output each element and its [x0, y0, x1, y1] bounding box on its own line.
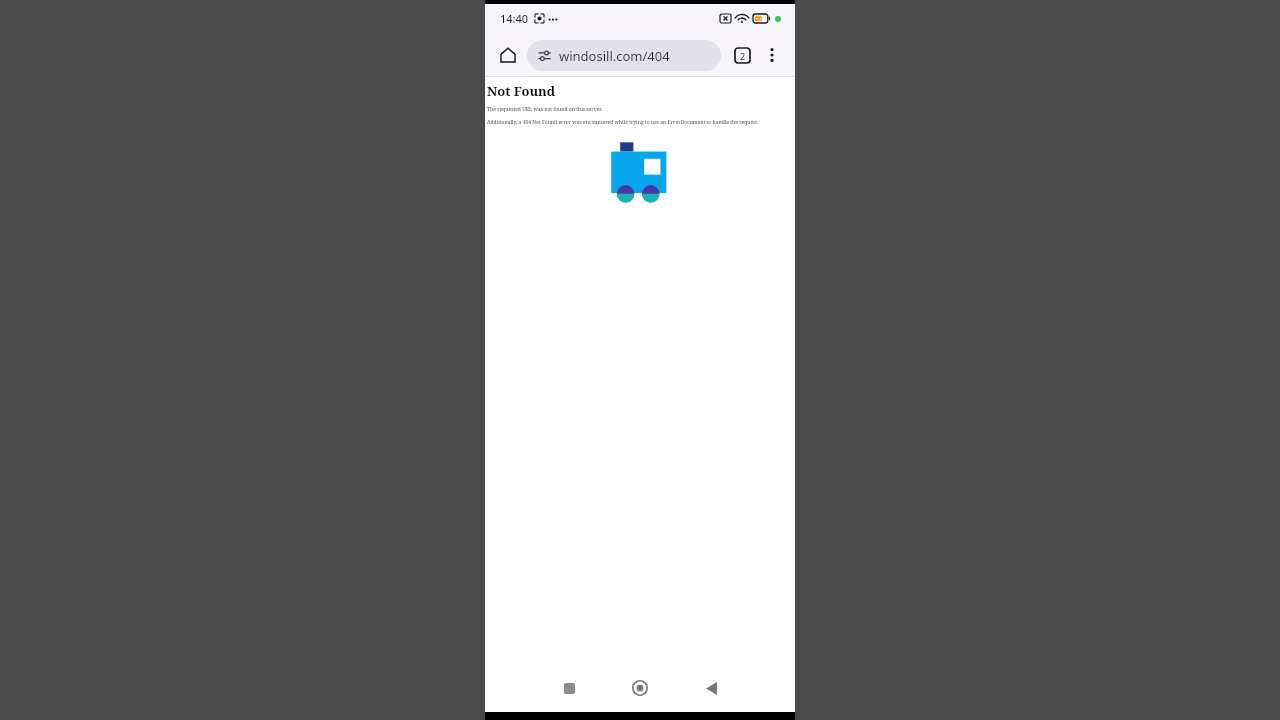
button[interactable]: windosill.com/404: [527, 40, 721, 71]
staticText: Additionally, a 404 Not Found error was …: [487, 119, 759, 126]
button[interactable]: Tabs, 2 open: [727, 40, 757, 70]
button[interactable]: Recent apps: [546, 665, 592, 711]
button[interactable]: More options: [757, 40, 787, 70]
staticText: 14:40: [500, 11, 529, 26]
staticText: The requested URL was not found on this …: [487, 106, 603, 113]
button[interactable]: Home: [617, 665, 663, 711]
staticText: windosill.com/404: [559, 47, 670, 65]
staticText: Not Found: [487, 82, 556, 100]
button[interactable]: Back: [688, 665, 734, 711]
staticText: 2: [740, 50, 746, 62]
button[interactable]: Home: [493, 40, 523, 70]
